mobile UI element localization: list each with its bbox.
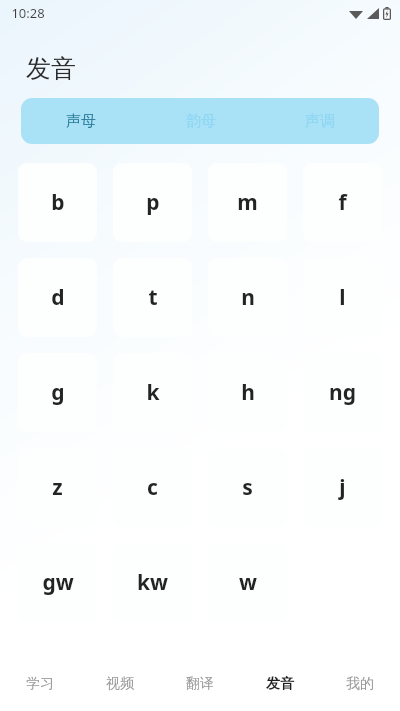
button[interactable]: t: [113, 258, 192, 337]
staticText: d: [51, 283, 65, 312]
button[interactable]: s: [208, 448, 287, 527]
staticText: w: [239, 568, 257, 597]
staticText: z: [52, 473, 63, 502]
staticText: m: [237, 188, 258, 217]
staticText: n: [241, 283, 255, 312]
staticText: 发音: [266, 675, 294, 693]
button[interactable]: k: [113, 353, 192, 432]
button[interactable]: gw: [18, 543, 97, 622]
staticText: 声母: [66, 112, 96, 131]
button[interactable]: m: [208, 163, 287, 242]
button[interactable]: 发音: [240, 657, 320, 711]
button[interactable]: l: [303, 258, 382, 337]
button[interactable]: 视频: [80, 657, 160, 711]
staticText: 10:28: [11, 4, 45, 22]
staticText: l: [339, 283, 346, 312]
staticText: 我的: [346, 675, 374, 693]
button[interactable]: h: [208, 353, 287, 432]
staticText: f: [338, 188, 347, 217]
button[interactable]: 学习: [0, 657, 80, 711]
staticText: 视频: [106, 675, 134, 693]
button[interactable]: w: [208, 543, 287, 622]
staticText: 翻译: [186, 675, 214, 693]
button[interactable]: f: [303, 163, 382, 242]
button[interactable]: 韵母: [141, 98, 260, 144]
button[interactable]: g: [18, 353, 97, 432]
staticText: c: [147, 473, 158, 502]
button[interactable]: p: [113, 163, 192, 242]
staticText: 韵母: [186, 112, 216, 131]
button[interactable]: ng: [303, 353, 382, 432]
staticText: p: [146, 188, 160, 217]
staticText: kw: [137, 568, 168, 597]
staticText: j: [339, 473, 346, 502]
button[interactable]: 声母: [21, 98, 141, 144]
button[interactable]: b: [18, 163, 97, 242]
button[interactable]: j: [303, 448, 382, 527]
staticText: k: [146, 378, 160, 407]
button[interactable]: n: [208, 258, 287, 337]
button[interactable]: d: [18, 258, 97, 337]
staticText: gw: [42, 568, 74, 597]
staticText: ng: [329, 378, 356, 407]
staticText: g: [51, 378, 65, 407]
button[interactable]: z: [18, 448, 97, 527]
staticText: 发音: [26, 53, 76, 84]
button[interactable]: c: [113, 448, 192, 527]
staticText: 声调: [305, 112, 335, 131]
staticText: h: [241, 378, 255, 407]
button[interactable]: kw: [113, 543, 192, 622]
staticText: t: [148, 283, 158, 312]
button[interactable]: 我的: [320, 657, 400, 711]
staticText: 学习: [26, 675, 54, 693]
staticText: s: [242, 473, 253, 502]
button[interactable]: 翻译: [160, 657, 240, 711]
staticText: b: [51, 188, 65, 217]
button[interactable]: 声调: [260, 98, 379, 144]
